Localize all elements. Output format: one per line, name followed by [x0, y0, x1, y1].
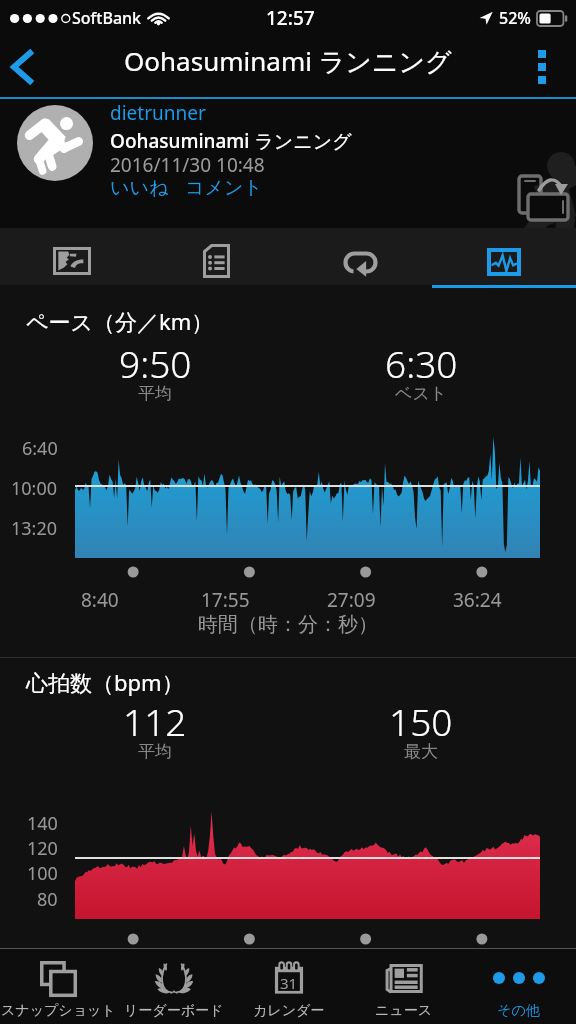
staticText: 平均: [138, 741, 172, 762]
staticText: SoftBank: [72, 7, 142, 29]
button[interactable]: Map: [0, 228, 144, 285]
staticText: 140: [27, 811, 58, 836]
button[interactable]: 31: [231, 949, 346, 1024]
staticText: Oohasuminami ランニング: [110, 128, 352, 154]
staticText: 10:00: [11, 476, 58, 501]
button[interactable]: スナップショット: [0, 949, 116, 1024]
staticText: 最大: [404, 741, 438, 762]
button[interactable]: その他: [461, 949, 576, 1024]
staticText: ニュース: [375, 1002, 432, 1020]
button[interactable]: Splits: [288, 228, 432, 285]
staticText: ペース（分／km）: [26, 306, 214, 336]
staticText: スナップショット: [1, 1002, 116, 1020]
button[interactable]: コメント: [185, 176, 263, 200]
staticText: 心拍数（bpm）: [26, 667, 184, 697]
staticText: 時間（時：分：秒）: [0, 612, 576, 637]
staticText: 112: [123, 696, 187, 746]
staticText: 8:40: [81, 587, 119, 613]
staticText: 6:40: [22, 436, 58, 461]
staticText: ベスト: [395, 383, 448, 404]
staticText: 100: [27, 861, 58, 886]
button[interactable]: Back: [0, 36, 52, 97]
staticText: リーダーボード: [124, 1002, 224, 1020]
button[interactable]: More options: [518, 36, 576, 97]
staticText: 80: [37, 887, 58, 912]
staticText: 27:09: [327, 587, 376, 613]
button[interactable]: いいね: [110, 176, 169, 200]
button[interactable]: リーダーボード: [116, 949, 231, 1024]
staticText: 12:57: [266, 5, 315, 31]
staticText: 31: [280, 973, 298, 993]
staticText: 9:50: [119, 338, 192, 388]
staticText: 120: [27, 836, 58, 861]
staticText: dietrunner: [110, 100, 206, 126]
staticText: 52%: [499, 7, 531, 29]
staticText: 17:55: [201, 587, 250, 613]
staticText: その他: [497, 1002, 540, 1020]
staticText: 6:30: [385, 338, 458, 388]
button[interactable]: Details: [144, 228, 288, 285]
staticText: カレンダー: [253, 1002, 325, 1020]
staticText: Oohasuminami ランニング: [124, 43, 452, 79]
staticText: 平均: [138, 383, 172, 404]
staticText: 13:20: [11, 516, 58, 541]
staticText: 36:24: [453, 587, 502, 613]
staticText: 150: [389, 696, 453, 746]
button[interactable]: ニュース: [346, 949, 461, 1024]
button[interactable]: Charts: [432, 228, 576, 285]
staticText: 2016/11/30 10:48: [110, 152, 265, 178]
